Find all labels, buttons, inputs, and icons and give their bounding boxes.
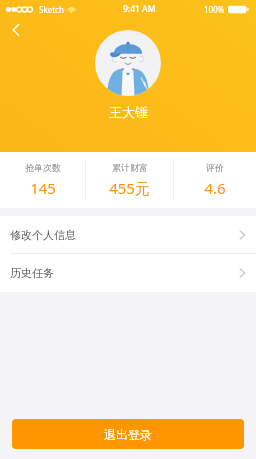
staticText: 修改个人信息 (10, 228, 76, 242)
staticText: Sketch (39, 4, 64, 15)
button[interactable]: 评价 (174, 152, 256, 208)
staticText: 历史任务 (10, 266, 54, 280)
button[interactable]: 修改个人信息 (0, 216, 256, 253)
staticText: 退出登录 (104, 427, 152, 442)
staticText: 评价 (206, 162, 224, 173)
button[interactable]: Profile avatar (95, 30, 161, 96)
button[interactable]: 历史任务 (0, 254, 256, 291)
button[interactable]: 抢单次数 (0, 152, 85, 208)
staticText: 455元 (109, 178, 150, 198)
staticText: 王大锤 (109, 104, 148, 120)
staticText: 4.6 (204, 178, 226, 198)
staticText: 145 (30, 178, 56, 198)
staticText: 累计财富 (112, 162, 148, 173)
button[interactable]: 退出登录 (12, 419, 244, 449)
button[interactable]: 累计财富 (86, 152, 173, 208)
staticText: 抢单次数 (25, 162, 61, 173)
staticText: 9:41 AM (123, 3, 156, 15)
button[interactable]: Back (2, 16, 30, 44)
staticText: 100% (204, 4, 225, 15)
